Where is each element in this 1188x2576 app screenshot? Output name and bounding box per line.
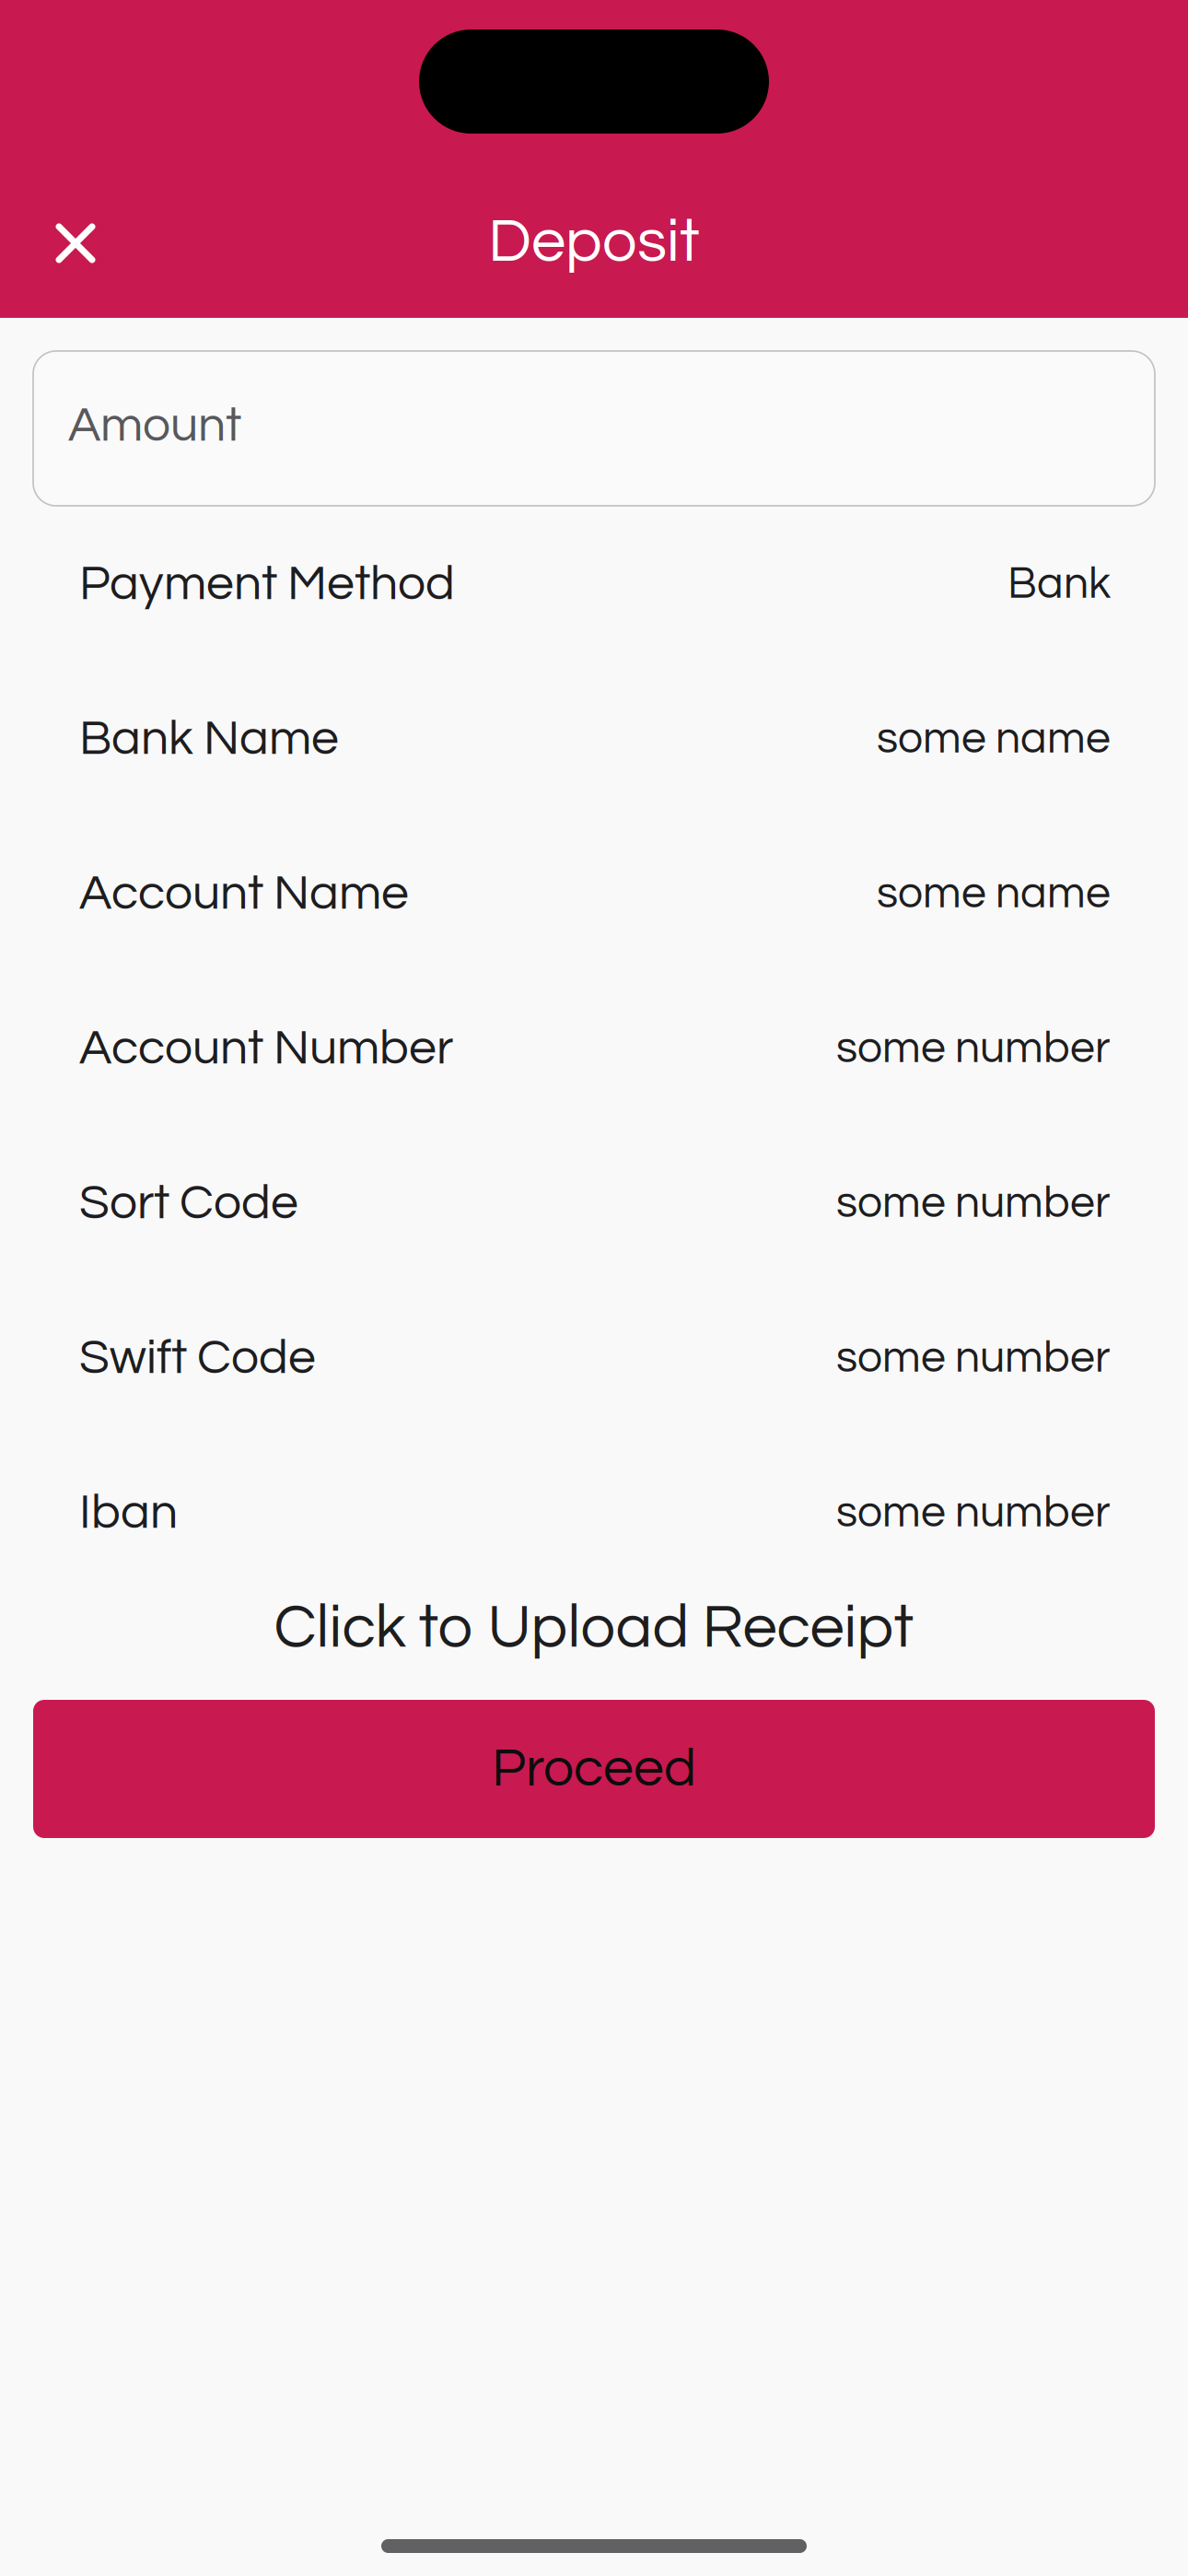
staticText: Iban — [79, 1487, 178, 1538]
button[interactable]: Account Name — [0, 816, 1188, 971]
button[interactable]: Swift Code — [0, 1281, 1188, 1435]
button[interactable]: Bank Name — [0, 662, 1188, 816]
button[interactable]: Click to Upload Receipt — [0, 1590, 1188, 1666]
staticText: Swift Code — [79, 1333, 316, 1383]
staticText: some name — [877, 716, 1111, 762]
staticText: Account Number — [79, 1023, 453, 1074]
staticText: Proceed — [492, 1741, 696, 1797]
staticText: some number — [836, 1335, 1111, 1381]
staticText: Deposit — [488, 210, 700, 274]
staticText: Amount — [68, 400, 241, 451]
staticText: Bank Name — [79, 714, 339, 764]
staticText: some name — [877, 871, 1111, 916]
button[interactable]: Sort Code — [0, 1126, 1188, 1281]
button[interactable]: Payment Method — [0, 507, 1188, 662]
button[interactable]: Close — [25, 193, 126, 294]
button[interactable]: Proceed — [33, 1700, 1155, 1838]
staticText: Account Name — [79, 868, 409, 919]
staticText: Payment Method — [79, 559, 455, 609]
staticText: Sort Code — [79, 1178, 298, 1228]
button[interactable]: Iban — [0, 1435, 1188, 1590]
staticText: some number — [836, 1490, 1111, 1536]
staticText: Click to Upload Receipt — [274, 1596, 914, 1660]
staticText: some number — [836, 1180, 1111, 1226]
button[interactable]: Account Number — [0, 971, 1188, 1126]
staticText: Bank — [1007, 561, 1111, 607]
staticText: some number — [836, 1026, 1111, 1071]
button[interactable]: Amount — [33, 351, 1155, 506]
